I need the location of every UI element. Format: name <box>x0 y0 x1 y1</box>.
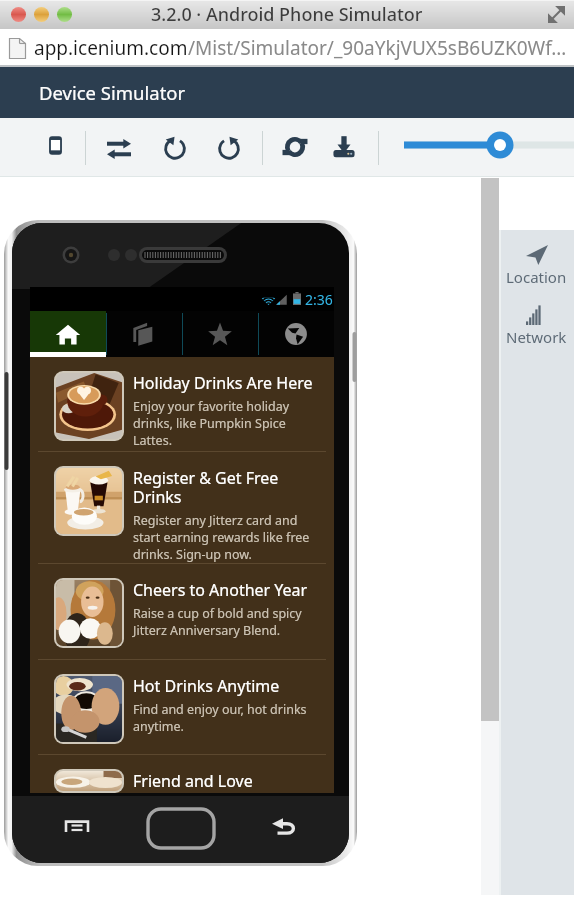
staticText: Network <box>506 327 567 347</box>
staticText: /Mist/Simulator/_90aYkjVUX5sB6UZK0Wf… <box>188 35 567 61</box>
staticText: app.icenium.com <box>34 35 188 61</box>
button[interactable]: Download <box>332 135 356 159</box>
staticText: Raise a cup of bold and spicy Jitterz An… <box>133 605 302 639</box>
button[interactable]: Hot Drinks Anytime <box>30 660 334 755</box>
staticText: Location <box>506 267 567 287</box>
button[interactable]: Device <box>44 134 67 157</box>
button[interactable]: Rotate left <box>162 134 188 160</box>
button[interactable]: Friend and Love <box>30 755 334 793</box>
button[interactable]: Network <box>499 302 574 350</box>
button[interactable]: Swap orientation <box>107 137 131 161</box>
button[interactable]: Zoom slider <box>404 130 574 160</box>
staticText: Register & Get Free Drinks <box>133 467 279 508</box>
button[interactable]: Tab <box>182 311 258 357</box>
staticText: Device Simulator <box>39 80 186 105</box>
button[interactable]: Tab <box>30 311 106 357</box>
staticText: Enjoy your favorite holiday drinks, like… <box>133 398 290 449</box>
button[interactable]: Rotate right <box>216 134 242 160</box>
staticText: Friend and Love <box>133 770 253 792</box>
button[interactable]: Tab <box>258 311 334 357</box>
button[interactable]: Holiday Drinks Are Here <box>30 357 334 452</box>
staticText: Find and enjoy our, hot drinks anytime. <box>133 701 307 735</box>
button[interactable]: Reload <box>283 135 307 159</box>
button[interactable]: Location <box>499 242 574 290</box>
button[interactable]: Register & Get Free Drinks <box>30 452 334 564</box>
staticText: 3.2.0 · Android Phone Simulator <box>151 2 423 27</box>
button[interactable]: Tab <box>106 311 182 357</box>
staticText: 2:36 <box>305 290 333 309</box>
staticText: Hot Drinks Anytime <box>133 675 280 697</box>
staticText: Register any Jitterz card and start earn… <box>133 512 310 563</box>
button[interactable]: Cheers to Another Year <box>30 564 334 660</box>
button[interactable]: Full screen <box>548 6 565 23</box>
staticText: Cheers to Another Year <box>133 579 308 601</box>
staticText: Holiday Drinks Are Here <box>133 372 313 394</box>
